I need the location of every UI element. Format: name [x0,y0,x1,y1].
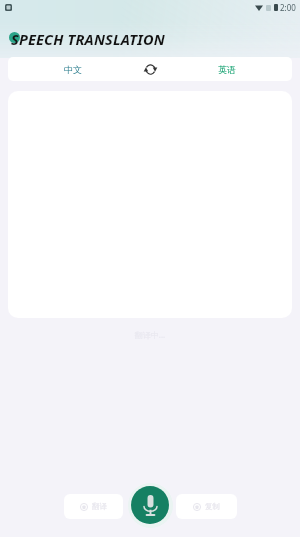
button[interactable]: Swap languages [138,57,162,81]
button[interactable]: 中文 [8,57,138,81]
button[interactable]: Record [131,486,169,524]
button[interactable]: 英语 [162,57,292,81]
staticText: 2:00 [280,2,296,13]
staticText: SPEECH TRANSLATION [11,29,165,49]
staticText: 中文 [64,64,82,75]
button[interactable]: 复制 [176,494,237,519]
staticText: 英语 [218,64,236,75]
staticText: 翻译 [92,502,107,511]
button[interactable]: 翻译 [64,494,123,519]
staticText: 复制 [205,502,220,511]
